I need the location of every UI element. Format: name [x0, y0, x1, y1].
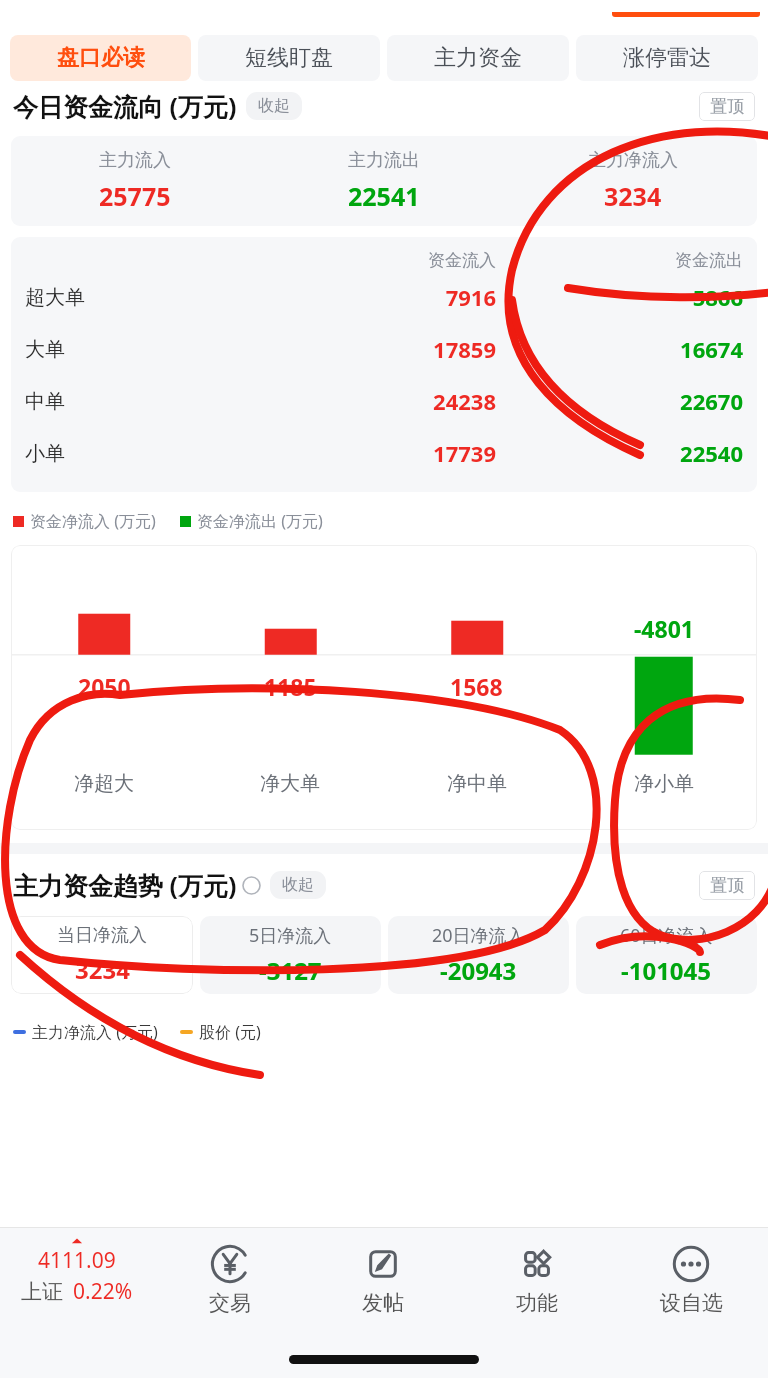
staticText: 收起	[258, 96, 290, 116]
staticText: 股价 (元)	[199, 1021, 261, 1043]
staticText: 涨停雷达	[623, 44, 711, 72]
staticText: 主力流入	[99, 149, 171, 172]
staticText: 22540	[496, 438, 743, 468]
staticText: 净小单	[634, 771, 694, 796]
button[interactable]: 盘口必读	[10, 35, 191, 81]
staticText: 3234	[604, 179, 662, 213]
staticText: 主力净流入 (万元)	[32, 1021, 158, 1043]
staticText: 超大单	[25, 285, 249, 310]
staticText: 资金净流入 (万元)	[30, 510, 156, 532]
button[interactable]: 当日净流入	[11, 916, 193, 994]
button[interactable]: 设自选	[614, 1236, 768, 1316]
staticText: -4801	[634, 613, 694, 644]
staticText: 收起	[282, 875, 314, 895]
button[interactable]: 主力资金	[387, 35, 569, 81]
button[interactable]: 2050	[11, 545, 757, 830]
staticText: -101045	[621, 954, 712, 987]
button[interactable]: 涨停雷达	[576, 35, 758, 81]
staticText: 资金流入	[249, 250, 496, 271]
staticText: 17739	[249, 438, 496, 468]
button[interactable]: 收起	[270, 871, 326, 899]
button[interactable]: 收起	[246, 92, 302, 120]
staticText: 24238	[249, 386, 496, 416]
staticText: 功能	[516, 1290, 558, 1316]
other: 帮助	[242, 876, 261, 895]
staticText: 60日净流入	[620, 923, 713, 948]
button[interactable]: 功能	[460, 1236, 614, 1316]
staticText: 20日净流入	[432, 923, 525, 948]
staticText: 主力流出	[348, 149, 420, 172]
button[interactable]: 资金流入	[11, 237, 757, 492]
staticText: 盘口必读	[57, 44, 145, 72]
staticText: 1568	[450, 671, 503, 702]
staticText: 5866	[496, 282, 743, 312]
staticText: 7916	[249, 282, 496, 312]
button[interactable]: 交易	[153, 1236, 306, 1316]
staticText: 短线盯盘	[245, 44, 333, 72]
staticText: 3234	[75, 953, 130, 986]
button[interactable]: 4111.09	[0, 1236, 153, 1306]
staticText: 交易	[209, 1290, 251, 1316]
staticText: 25775	[99, 179, 171, 213]
staticText: 净中单	[447, 771, 507, 796]
staticText: -3127	[259, 954, 322, 987]
staticText: 5日净流入	[249, 923, 332, 948]
button[interactable]: 发帖	[306, 1236, 460, 1316]
button[interactable]: 置顶	[699, 92, 755, 121]
staticText: 2050	[78, 671, 131, 702]
staticText: 置顶	[710, 875, 744, 896]
button[interactable]: 主力流入	[11, 136, 757, 226]
button[interactable]: 20日净流入	[388, 916, 569, 994]
staticText: 大单	[25, 337, 249, 362]
staticText: 17859	[249, 334, 496, 364]
staticText: 资金净流出 (万元)	[197, 510, 323, 532]
staticText: 中单	[25, 389, 249, 414]
staticText: 主力资金趋势 (万元)	[13, 868, 237, 902]
staticText: 0.22%	[73, 1277, 133, 1306]
staticText: 今日资金流向 (万元)	[13, 89, 237, 123]
staticText: 净超大	[74, 771, 134, 796]
button[interactable]: 置顶	[699, 871, 755, 900]
staticText: 净大单	[260, 771, 320, 796]
button[interactable]: 5日净流入	[200, 916, 381, 994]
staticText: 发帖	[362, 1290, 404, 1316]
button[interactable]: 60日净流入	[576, 916, 757, 994]
staticText: 上证	[21, 1279, 63, 1305]
staticText: 小单	[25, 441, 249, 466]
staticText: 主力净流入	[588, 149, 678, 172]
staticText: 置顶	[710, 96, 744, 117]
staticText: 设自选	[660, 1290, 723, 1316]
staticText: 22541	[348, 179, 420, 213]
staticText: 资金流出	[496, 250, 743, 271]
staticText: 当日净流入	[57, 924, 147, 947]
staticText: 16674	[496, 334, 743, 364]
staticText: -20943	[440, 954, 517, 987]
staticText: 4111.09	[38, 1246, 116, 1275]
staticText: 主力资金	[434, 44, 522, 72]
staticText: 22670	[496, 386, 743, 416]
staticText: 1185	[264, 671, 317, 702]
button[interactable]: 短线盯盘	[198, 35, 380, 81]
